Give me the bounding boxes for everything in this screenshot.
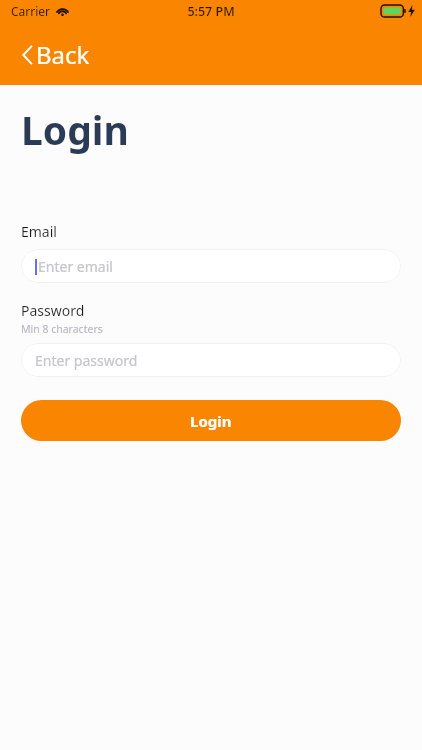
staticText: Enter password	[35, 351, 138, 370]
button[interactable]: Enter password	[21, 343, 401, 377]
button[interactable]: Enter email	[21, 249, 401, 283]
staticText: Enter email	[38, 257, 113, 276]
staticText: Min 8 characters	[21, 322, 103, 336]
button[interactable]: Login	[21, 400, 401, 441]
staticText: Email	[21, 222, 57, 241]
staticText: Back	[36, 38, 90, 71]
staticText: 5:57 PM	[187, 3, 235, 20]
staticText: Carrier	[11, 3, 51, 19]
staticText: Login	[21, 103, 129, 156]
staticText: Login	[190, 411, 232, 431]
button[interactable]: Back	[16, 34, 96, 75]
staticText: Password	[21, 301, 85, 320]
